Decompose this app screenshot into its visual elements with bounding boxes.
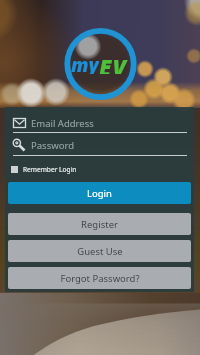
staticText: Forgot Password? [60,272,140,285]
button[interactable]: Forgot Password? [8,267,191,289]
staticText: Login [87,187,112,200]
staticText: Guest Use [77,245,123,258]
staticText: Email Address [31,117,94,130]
button[interactable]: Register [8,213,191,235]
staticText: Remember Login [23,165,77,174]
staticText: Password [31,139,74,152]
button[interactable]: Email Address [8,111,191,135]
staticText: Register [81,218,118,231]
button[interactable]: Remember Login [11,161,77,177]
staticText: EV [99,52,128,74]
button[interactable]: Guest Use [8,240,191,262]
staticText: my [71,52,99,74]
button[interactable]: Password [8,134,191,156]
button[interactable]: Login [8,182,191,204]
